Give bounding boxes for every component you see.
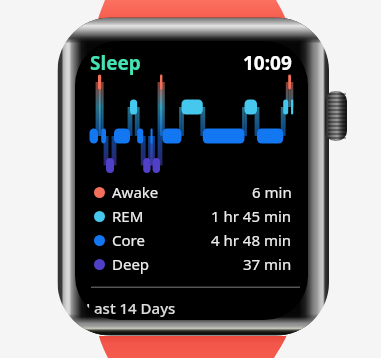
button[interactable]: Core [75,228,308,252]
staticText: 4 hr 48 min [211,230,292,250]
staticText: Awake [112,182,159,202]
staticText: 1 hr 45 min [211,206,292,226]
button[interactable]: Deep [75,252,308,276]
staticText: 37 min [243,254,292,274]
staticText: 6 min [252,182,292,202]
staticText: REM [112,206,144,226]
button[interactable]: Awake [75,180,308,204]
staticText: Deep [112,254,150,274]
staticText: Core [112,230,145,250]
staticText: Last 14 Days [86,298,176,318]
staticText: Sleep [90,50,141,76]
staticText: 10:09 [243,50,292,76]
button[interactable]: Last 14 Days [86,298,176,318]
button[interactable]: Sleep [90,50,141,76]
button[interactable]: REM [75,204,308,228]
